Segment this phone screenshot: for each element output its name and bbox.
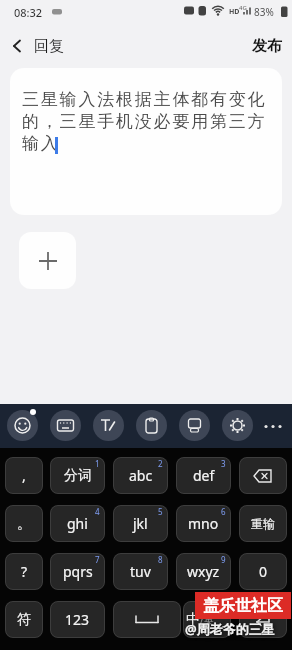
button[interactable]: 0 [239, 553, 287, 590]
button[interactable]: , [5, 457, 43, 494]
button[interactable] [239, 457, 287, 494]
button[interactable]: 123 [50, 601, 105, 638]
staticText: 1 [95, 458, 100, 469]
button[interactable] [93, 410, 124, 441]
staticText: 7 [95, 554, 100, 565]
staticText: HD [229, 7, 240, 17]
button[interactable]: tuv [113, 553, 168, 590]
button[interactable] [19, 232, 76, 289]
button[interactable]: 回复 [8, 27, 64, 65]
button[interactable] [7, 410, 38, 441]
button[interactable]: ? [5, 553, 43, 590]
button[interactable]: 中 [183, 601, 231, 638]
staticText: mno [188, 514, 219, 533]
staticText: 发布 [252, 37, 282, 56]
staticText: 。 [17, 515, 31, 533]
button[interactable] [136, 410, 167, 441]
staticText: 3 [221, 458, 226, 469]
button[interactable] [222, 410, 253, 441]
staticText: 三星输入法根据主体都有变化 的，三星手机没必要用第三方 输入 [22, 89, 267, 154]
staticText: @周老爷的三星 [185, 620, 275, 638]
staticText: 5 [158, 506, 163, 517]
staticText: def [193, 466, 215, 485]
staticText: /英 [200, 613, 214, 627]
button[interactable]: ghi [50, 505, 105, 542]
staticText: 123 [65, 610, 90, 629]
staticText: , [22, 466, 26, 485]
staticText: 分词 [64, 467, 92, 485]
button[interactable] [239, 601, 287, 638]
staticText: 6 [221, 506, 226, 517]
button[interactable]: pqrs [50, 553, 105, 590]
button[interactable]: def [176, 457, 231, 494]
staticText: 2 [158, 458, 163, 469]
button[interactable] [113, 601, 181, 638]
button[interactable]: 发布 [252, 37, 282, 56]
button[interactable]: 重输 [239, 505, 287, 542]
button[interactable]: mno [176, 505, 231, 542]
button[interactable]: wxyz [176, 553, 231, 590]
button[interactable]: 分词 [50, 457, 105, 494]
staticText: 08:32 [14, 5, 43, 20]
staticText: 83% [254, 5, 274, 19]
staticText: abc [129, 466, 153, 485]
button[interactable] [179, 410, 210, 441]
staticText: ghi [67, 514, 88, 533]
staticText: pqrs [63, 562, 93, 581]
staticText: wxyz [187, 562, 220, 581]
staticText: 回复 [34, 37, 64, 56]
staticText: 4G [239, 4, 247, 12]
button[interactable]: 。 [5, 505, 43, 542]
staticText: ? [21, 562, 28, 581]
staticText: 符 [17, 611, 31, 629]
staticText: tuv [130, 562, 151, 581]
staticText: jkl [133, 514, 148, 533]
staticText: 9 [221, 554, 226, 565]
button[interactable]: 三星输入法根据主体都有变化 的，三星手机没必要用第三方 输入 [10, 68, 282, 215]
button[interactable]: jkl [113, 505, 168, 542]
staticText: 中 [186, 611, 200, 629]
staticText: 8 [158, 554, 163, 565]
button[interactable]: 符 [5, 601, 43, 638]
staticText: 4 [95, 506, 100, 517]
staticText: 重输 [251, 516, 275, 531]
button[interactable]: abc [113, 457, 168, 494]
button[interactable] [50, 410, 81, 441]
staticText: 盖乐世社区 [203, 596, 283, 616]
staticText: 0 [259, 562, 268, 581]
